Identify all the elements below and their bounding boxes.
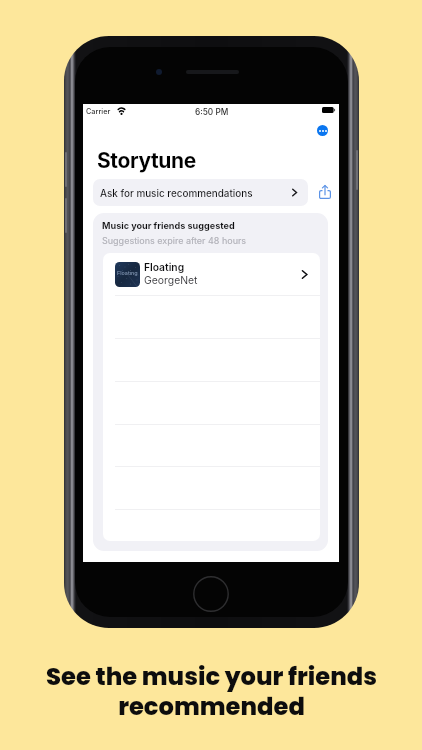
staticText: Floating xyxy=(144,261,185,273)
staticText: 6:50 PM xyxy=(195,107,229,117)
button[interactable]: Share xyxy=(314,180,335,204)
staticText: GeorgeNet xyxy=(144,274,198,287)
staticText: Floating xyxy=(117,270,138,277)
button[interactable]: More options xyxy=(317,125,328,136)
staticText: Music your friends suggested xyxy=(102,220,235,231)
button[interactable]: Ask for music recommendations xyxy=(93,179,308,206)
staticText: See the music your friends recommended xyxy=(46,660,377,723)
staticText: Storytune xyxy=(97,148,196,173)
staticText: Carrier xyxy=(86,107,111,116)
staticText: Ask for music recommendations xyxy=(100,187,253,199)
staticText: Suggestions expire after 48 hours xyxy=(102,235,247,246)
button[interactable]: Floating xyxy=(103,253,320,295)
